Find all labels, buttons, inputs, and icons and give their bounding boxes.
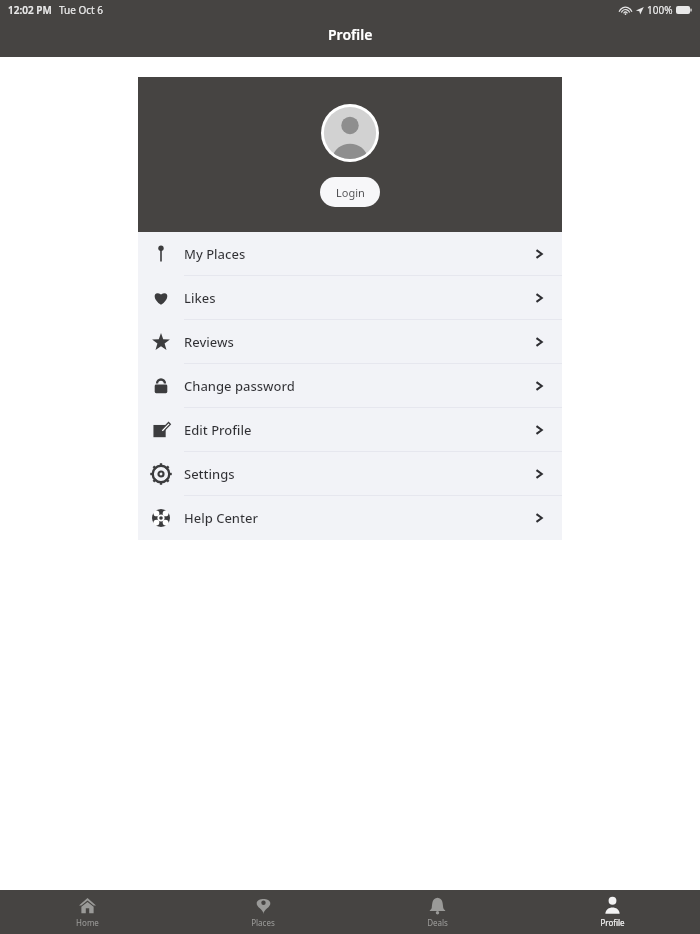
staticText: My Places — [184, 245, 246, 263]
staticText: Profile — [328, 25, 373, 44]
staticText: Deals — [427, 917, 448, 928]
other: Wi-Fi — [620, 5, 631, 16]
button[interactable]: Likes — [138, 276, 562, 320]
staticText: Home — [76, 917, 99, 928]
button[interactable]: Home — [0, 890, 175, 934]
staticText: Tue Oct 6 — [59, 3, 104, 17]
staticText: Profile — [600, 917, 625, 928]
staticText: Settings — [184, 465, 235, 483]
other: Battery — [676, 6, 692, 14]
other: Location — [635, 6, 644, 15]
button[interactable]: Reviews — [138, 320, 562, 364]
staticText: Change password — [184, 377, 295, 395]
button[interactable]: Login — [320, 177, 380, 207]
button[interactable]: Settings — [138, 452, 562, 496]
staticText: Likes — [184, 289, 216, 307]
staticText: 100% — [647, 3, 673, 17]
button[interactable]: Change password — [138, 364, 562, 408]
button[interactable]: Help Center — [138, 496, 562, 540]
staticText: Places — [251, 917, 275, 928]
staticText: 12:02 PM — [8, 3, 52, 17]
button[interactable]: Edit Profile — [138, 408, 562, 452]
button[interactable]: Deals — [350, 890, 525, 934]
staticText: Reviews — [184, 333, 234, 351]
staticText: Help Center — [184, 509, 258, 527]
button[interactable]: My Places — [138, 232, 562, 276]
staticText: Edit Profile — [184, 421, 252, 439]
staticText: Login — [336, 185, 365, 200]
button[interactable]: Profile — [525, 890, 700, 934]
button[interactable]: Places — [175, 890, 350, 934]
